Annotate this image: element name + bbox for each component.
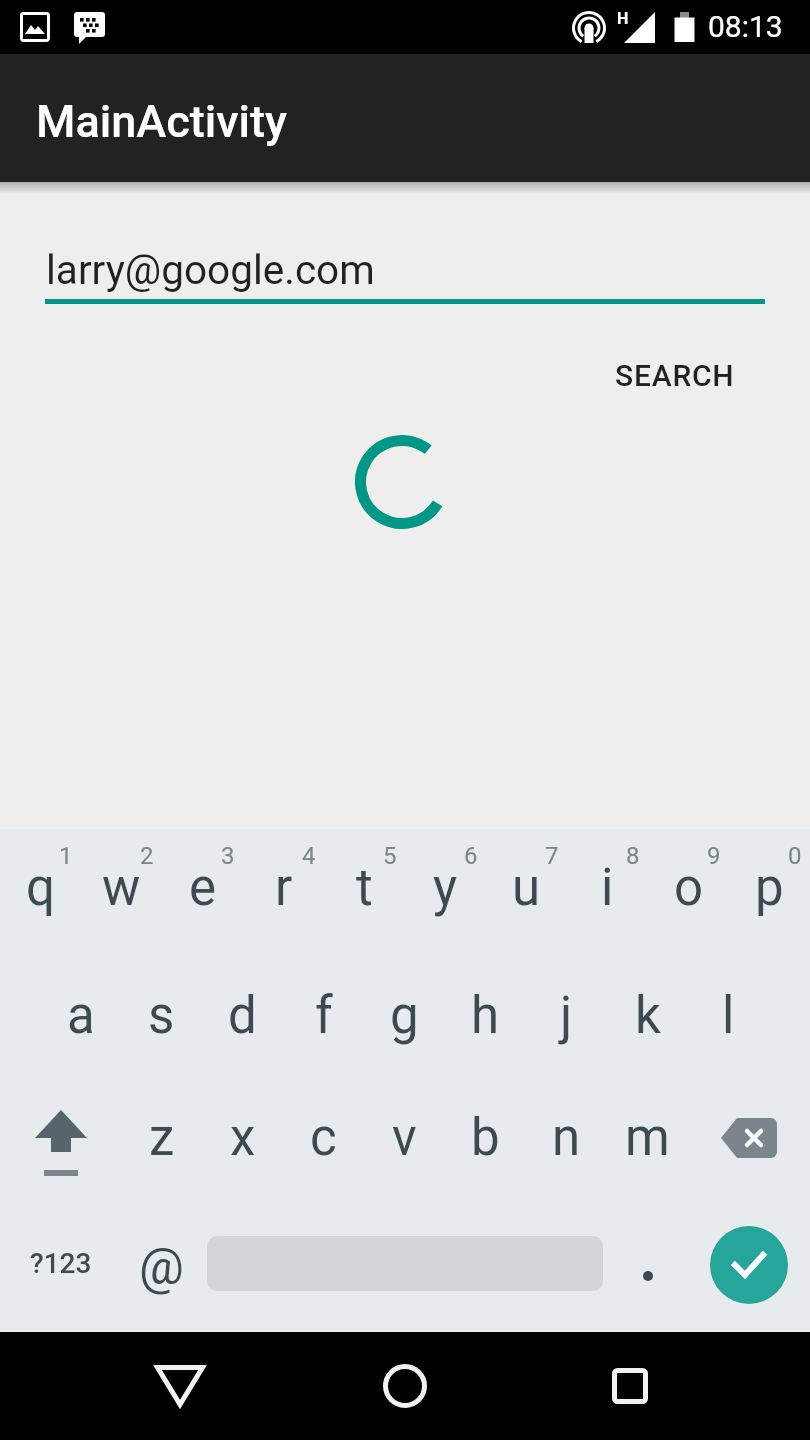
- staticText: 1: [59, 842, 73, 870]
- staticText: h: [471, 986, 500, 1046]
- button[interactable]: z: [121, 1080, 202, 1196]
- staticText: t: [356, 858, 373, 918]
- staticText: 9: [707, 842, 721, 870]
- button[interactable]: w: [81, 830, 162, 946]
- staticText: H: [617, 9, 629, 28]
- button[interactable]: t: [324, 830, 405, 946]
- button[interactable]: p: [729, 830, 810, 946]
- button[interactable]: f: [283, 958, 364, 1074]
- staticText: v: [392, 1108, 417, 1168]
- staticText: c: [310, 1108, 337, 1168]
- staticText: 4: [302, 842, 316, 870]
- button[interactable]: SEARCH: [590, 330, 760, 420]
- button[interactable]: y: [405, 830, 486, 946]
- button[interactable]: ?123: [0, 1205, 121, 1321]
- staticText: larry@google.com: [46, 246, 375, 293]
- staticText: q: [26, 858, 55, 918]
- staticText: 7: [545, 842, 559, 870]
- button[interactable]: h: [445, 958, 526, 1074]
- staticText: p: [755, 858, 784, 918]
- staticText: n: [552, 1108, 581, 1168]
- staticText: SEARCH: [615, 358, 735, 393]
- button[interactable]: b: [445, 1080, 526, 1196]
- button[interactable]: n: [526, 1080, 607, 1196]
- staticText: b: [471, 1108, 500, 1168]
- staticText: m: [625, 1108, 670, 1168]
- staticText: 2: [140, 842, 154, 870]
- staticText: j: [560, 986, 573, 1046]
- button[interactable]: g: [364, 958, 445, 1074]
- staticText: w: [102, 858, 141, 918]
- staticText: a: [67, 986, 95, 1046]
- staticText: @: [139, 1238, 184, 1297]
- staticText: y: [433, 858, 458, 918]
- button[interactable]: [365, 1346, 445, 1426]
- button[interactable]: x: [202, 1080, 283, 1196]
- button[interactable]: m: [607, 1080, 688, 1196]
- button[interactable]: u: [486, 830, 567, 946]
- button[interactable]: k: [607, 958, 688, 1074]
- staticText: 0: [788, 842, 802, 870]
- button[interactable]: [202, 1205, 607, 1321]
- button[interactable]: @: [121, 1205, 202, 1321]
- button[interactable]: d: [202, 958, 283, 1074]
- button[interactable]: q: [0, 830, 81, 946]
- staticText: 3: [221, 842, 235, 870]
- button[interactable]: s: [121, 958, 202, 1074]
- button[interactable]: [607, 1205, 688, 1321]
- staticText: 08:13: [708, 9, 783, 44]
- staticText: i: [601, 858, 614, 918]
- button[interactable]: j: [526, 958, 607, 1074]
- staticText: z: [149, 1108, 175, 1168]
- button[interactable]: [688, 1080, 810, 1196]
- staticText: r: [275, 858, 293, 918]
- button[interactable]: c: [283, 1080, 364, 1196]
- staticText: o: [674, 858, 704, 918]
- staticText: e: [189, 858, 217, 918]
- staticText: 5: [383, 842, 397, 870]
- staticText: x: [230, 1108, 256, 1168]
- button[interactable]: r: [243, 830, 324, 946]
- staticText: u: [512, 858, 541, 918]
- button[interactable]: o: [648, 830, 729, 946]
- button[interactable]: v: [364, 1080, 445, 1196]
- button[interactable]: [688, 1205, 810, 1321]
- button[interactable]: larry@google.com: [46, 246, 810, 293]
- button[interactable]: i: [567, 830, 648, 946]
- button[interactable]: a: [40, 958, 121, 1074]
- staticText: k: [635, 986, 661, 1046]
- button[interactable]: l: [688, 958, 769, 1074]
- staticText: d: [228, 986, 257, 1046]
- button[interactable]: [0, 1080, 121, 1196]
- staticText: 8: [626, 842, 640, 870]
- button[interactable]: [140, 1346, 220, 1426]
- staticText: s: [148, 986, 175, 1046]
- button[interactable]: [590, 1346, 670, 1426]
- staticText: g: [390, 986, 419, 1046]
- button[interactable]: e: [162, 830, 243, 946]
- staticText: l: [722, 986, 735, 1046]
- staticText: 6: [464, 842, 478, 870]
- staticText: f: [315, 986, 333, 1046]
- staticText: MainActivity: [36, 95, 288, 148]
- staticText: ?123: [30, 1247, 92, 1280]
